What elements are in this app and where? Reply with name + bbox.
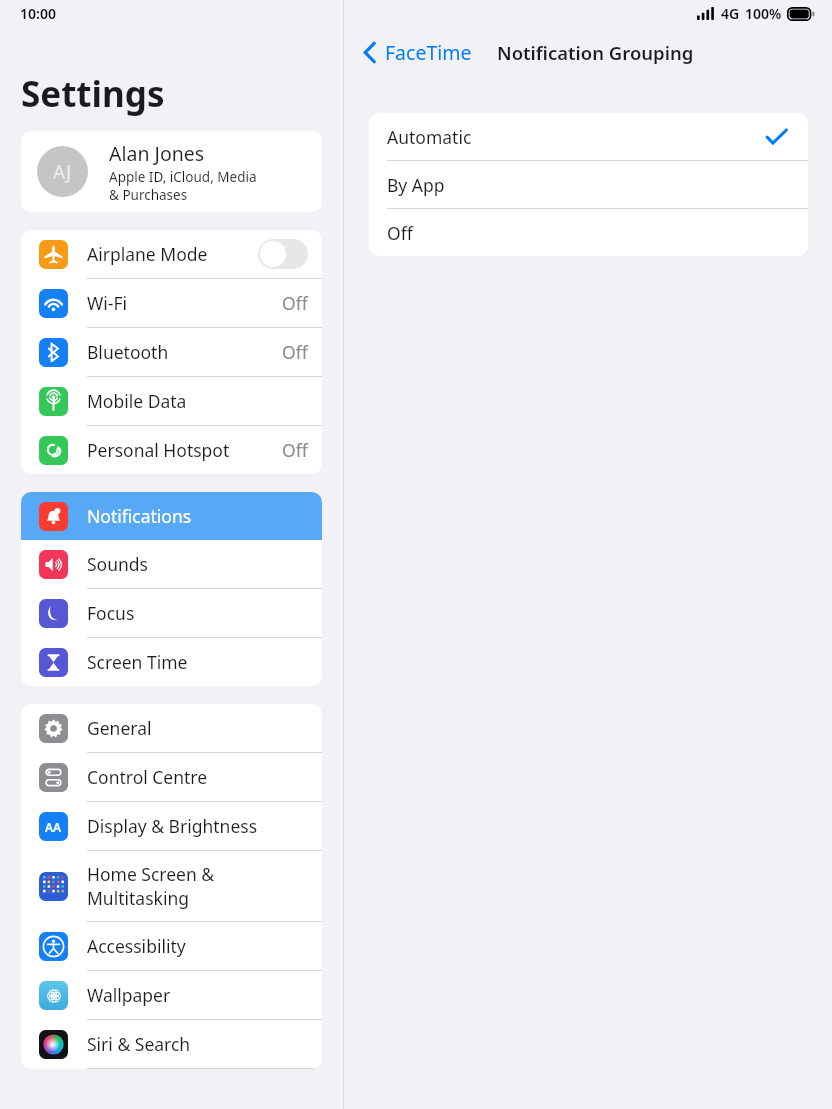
staticText: Bluetooth <box>87 340 169 364</box>
staticText: By App <box>387 173 445 197</box>
staticText: Off <box>387 221 413 245</box>
button[interactable]: Siri & Search <box>21 1020 322 1068</box>
staticText: Automatic <box>387 125 472 149</box>
button[interactable]: Notifications <box>21 492 322 540</box>
staticText: Apple ID, iCloud, Media <box>109 168 257 186</box>
staticText: 4G <box>721 4 740 23</box>
staticText: Airplane Mode <box>87 242 208 266</box>
staticText: Accessibility <box>87 934 186 958</box>
staticText: Wi-Fi <box>87 291 128 315</box>
staticText: General <box>87 716 152 740</box>
staticText: Mobile Data <box>87 389 187 413</box>
button[interactable]: AA <box>21 802 322 850</box>
staticText: Alan Jones <box>109 140 205 167</box>
staticText: Focus <box>87 601 135 625</box>
staticText: FaceTime <box>385 39 472 66</box>
staticText: Off <box>282 291 308 315</box>
staticText: 10:00 <box>20 4 56 23</box>
staticText: Off <box>282 438 308 462</box>
button[interactable]: AJ <box>21 131 322 212</box>
button[interactable]: Wi-Fi <box>21 279 322 327</box>
button[interactable]: Personal Hotspot <box>21 426 322 474</box>
staticText: Home Screen & <box>87 862 215 886</box>
staticText: Wallpaper <box>87 983 171 1007</box>
button[interactable]: Sounds <box>21 540 322 588</box>
button[interactable]: General <box>21 704 322 752</box>
staticText: Display & Brightness <box>87 814 258 838</box>
button[interactable]: Airplane Mode <box>21 230 322 278</box>
staticText: & Purchases <box>109 186 188 204</box>
button[interactable]: Accessibility <box>21 922 322 970</box>
button[interactable]: Control Centre <box>21 753 322 801</box>
button[interactable]: Screen Time <box>21 638 322 686</box>
staticText: Off <box>282 340 308 364</box>
button[interactable]: Bluetooth <box>21 328 322 376</box>
staticText: Siri & Search <box>87 1032 191 1056</box>
button[interactable]: Mobile Data <box>21 377 322 425</box>
staticText: Screen Time <box>87 650 188 674</box>
button[interactable]: Focus <box>21 589 322 637</box>
button[interactable]: Off <box>369 209 808 256</box>
staticText: AJ <box>53 159 72 185</box>
staticText: Control Centre <box>87 765 208 789</box>
staticText: AA <box>45 819 62 835</box>
button[interactable]: Wallpaper <box>21 971 322 1019</box>
staticText: Sounds <box>87 552 148 576</box>
staticText: Multitasking <box>87 886 189 910</box>
button[interactable]: Home Screen & <box>21 851 322 921</box>
staticText: Settings <box>21 70 165 118</box>
button[interactable]: Automatic <box>369 113 808 160</box>
staticText: Personal Hotspot <box>87 438 230 462</box>
staticText: Notification Grouping <box>497 40 694 65</box>
staticText: 100% <box>745 4 782 23</box>
button[interactable]: By App <box>369 161 808 208</box>
staticText: Notifications <box>87 504 192 528</box>
button[interactable]: Toggle Airplane Mode <box>258 239 308 269</box>
button[interactable]: FaceTime <box>360 33 476 72</box>
